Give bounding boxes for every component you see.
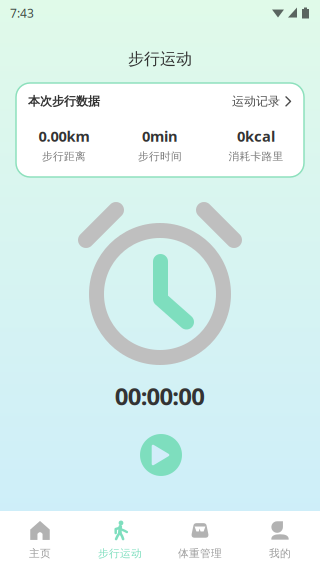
button[interactable]: Start [140, 434, 182, 476]
staticText: 步行距离 [42, 150, 86, 163]
button[interactable]: 步行运动 [80, 511, 160, 569]
staticText: 步行时间 [138, 150, 182, 163]
staticText: 我的 [269, 547, 291, 560]
button[interactable]: 我的 [240, 511, 320, 569]
staticText: 0min [142, 126, 178, 146]
staticText: 消耗卡路里 [228, 150, 283, 163]
button[interactable]: 体重管理 [160, 511, 240, 569]
staticText: 本次步行数据 [28, 94, 100, 109]
staticText: 运动记录 [232, 94, 280, 109]
button[interactable]: 运动记录 [232, 94, 292, 109]
staticText: 步行运动 [128, 49, 192, 69]
button[interactable]: 主页 [0, 511, 80, 569]
staticText: 0.00km [38, 126, 89, 146]
staticText: 步行运动 [98, 547, 142, 560]
staticText: 00:00:00 [115, 380, 205, 412]
staticText: 主页 [29, 547, 51, 560]
staticText: 0kcal [237, 126, 275, 146]
staticText: 体重管理 [178, 547, 222, 560]
staticText: 7:43 [10, 5, 34, 21]
